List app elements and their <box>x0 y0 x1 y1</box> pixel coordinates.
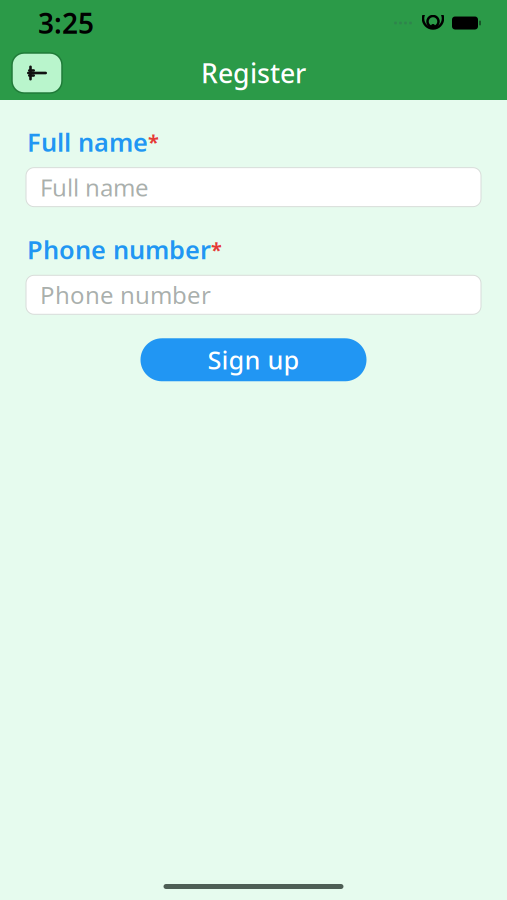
staticText: Full name <box>40 171 149 203</box>
staticText: Register <box>201 55 306 91</box>
staticText: Sign up <box>207 343 299 377</box>
staticText: Phone number <box>40 279 211 311</box>
button[interactable]: Back <box>12 53 62 93</box>
staticText: Full name <box>27 125 148 159</box>
staticText: * <box>148 128 159 155</box>
button[interactable]: Sign up <box>140 338 366 381</box>
staticText: * <box>211 236 222 263</box>
staticText: Phone number <box>27 233 211 266</box>
staticText: 3:25 <box>38 4 94 42</box>
